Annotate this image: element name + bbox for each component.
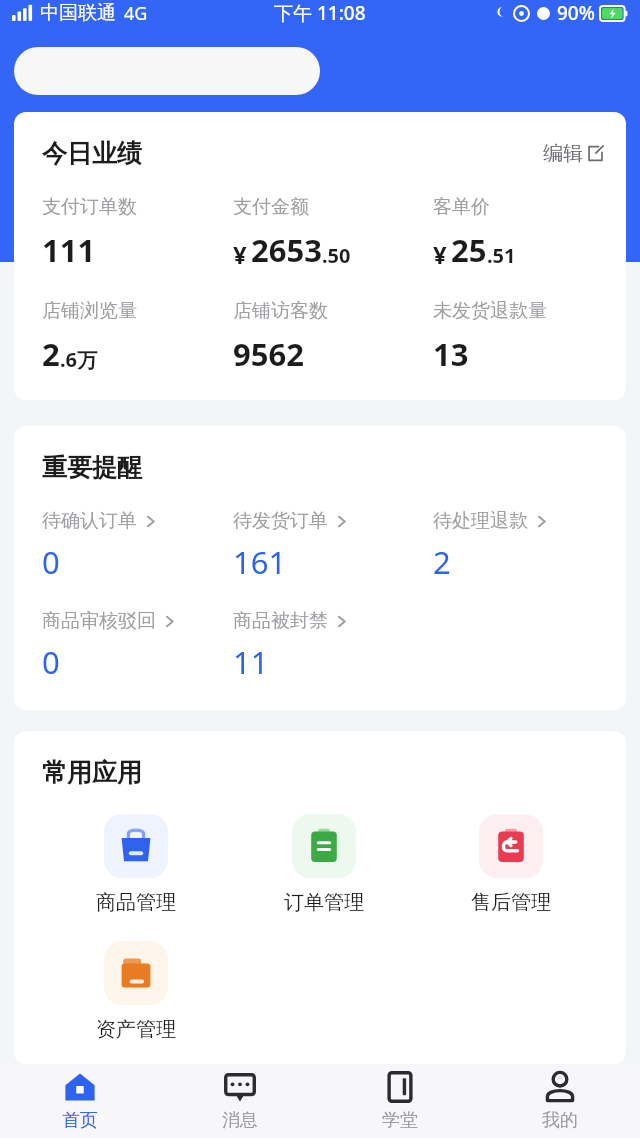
staticText: .51	[487, 242, 516, 269]
button[interactable]: 售后管理	[417, 814, 604, 915]
staticText: 编辑	[543, 141, 583, 166]
button[interactable]: 商品被封禁	[233, 609, 433, 683]
button[interactable]: 未发货退款量	[433, 299, 604, 375]
staticText: ¥	[233, 238, 247, 271]
staticText: 客单价	[433, 195, 490, 219]
staticText: 订单管理	[284, 890, 364, 915]
staticText: 支付金额	[233, 195, 309, 219]
staticText: 店铺访客数	[233, 299, 328, 323]
staticText: 中国联通	[40, 1, 116, 25]
button[interactable]: 商品审核驳回	[42, 609, 233, 683]
staticText: 待处理退款	[433, 509, 528, 533]
staticText: .50	[322, 242, 351, 269]
button[interactable]: 客单价	[433, 195, 604, 271]
staticText: 2	[42, 333, 60, 375]
staticText: .6万	[60, 346, 98, 373]
staticText: 首页	[62, 1109, 98, 1132]
staticText: 重要提醒	[42, 452, 142, 483]
button[interactable]: 店铺浏览量	[42, 299, 233, 375]
button[interactable]: 商品管理	[42, 814, 230, 915]
button[interactable]: 编辑	[543, 141, 604, 166]
staticText: 支付订单数	[42, 195, 137, 219]
button[interactable]: 待处理退款	[433, 509, 604, 583]
staticText: 11	[233, 641, 269, 683]
staticText: 商品被封禁	[233, 609, 328, 633]
staticText: 0	[42, 641, 60, 683]
staticText: 未发货退款量	[433, 299, 547, 323]
staticText: 下午 11:08	[274, 0, 366, 26]
staticText: 待发货订单	[233, 509, 328, 533]
button[interactable]: 搜索	[14, 47, 320, 95]
staticText: 9562	[233, 333, 304, 375]
button[interactable]: 支付订单数	[42, 195, 233, 271]
button[interactable]: 首页	[0, 1070, 160, 1132]
staticText: 今日业绩	[42, 138, 142, 169]
button[interactable]: 订单管理	[230, 814, 417, 915]
button[interactable]: 店铺访客数	[233, 299, 433, 375]
staticText: 待确认订单	[42, 509, 137, 533]
staticText: 4G	[124, 1, 148, 26]
staticText: 111	[42, 229, 96, 271]
staticText: 2	[433, 541, 451, 583]
button[interactable]: 我的	[480, 1070, 640, 1132]
button[interactable]: 消息	[160, 1070, 320, 1132]
staticText: 我的	[542, 1109, 578, 1132]
staticText: 161	[233, 541, 287, 583]
staticText: 资产管理	[96, 1017, 176, 1042]
staticText: 25	[451, 229, 487, 271]
staticText: 商品管理	[96, 890, 176, 915]
button[interactable]: 支付金额	[233, 195, 433, 271]
button[interactable]: 待发货订单	[233, 509, 433, 583]
staticText: 学堂	[382, 1109, 418, 1132]
staticText: 店铺浏览量	[42, 299, 137, 323]
staticText: 消息	[222, 1109, 258, 1132]
staticText: 90%	[557, 0, 595, 26]
staticText: 常用应用	[42, 757, 142, 788]
staticText: 商品审核驳回	[42, 609, 156, 633]
button[interactable]: 资产管理	[42, 941, 230, 1042]
staticText: ¥	[433, 238, 447, 271]
button[interactable]: 待确认订单	[42, 509, 233, 583]
button[interactable]: 学堂	[320, 1070, 480, 1132]
staticText: 0	[42, 541, 60, 583]
staticText: 13	[433, 333, 469, 375]
staticText: 售后管理	[471, 890, 551, 915]
staticText: 2653	[251, 229, 322, 271]
